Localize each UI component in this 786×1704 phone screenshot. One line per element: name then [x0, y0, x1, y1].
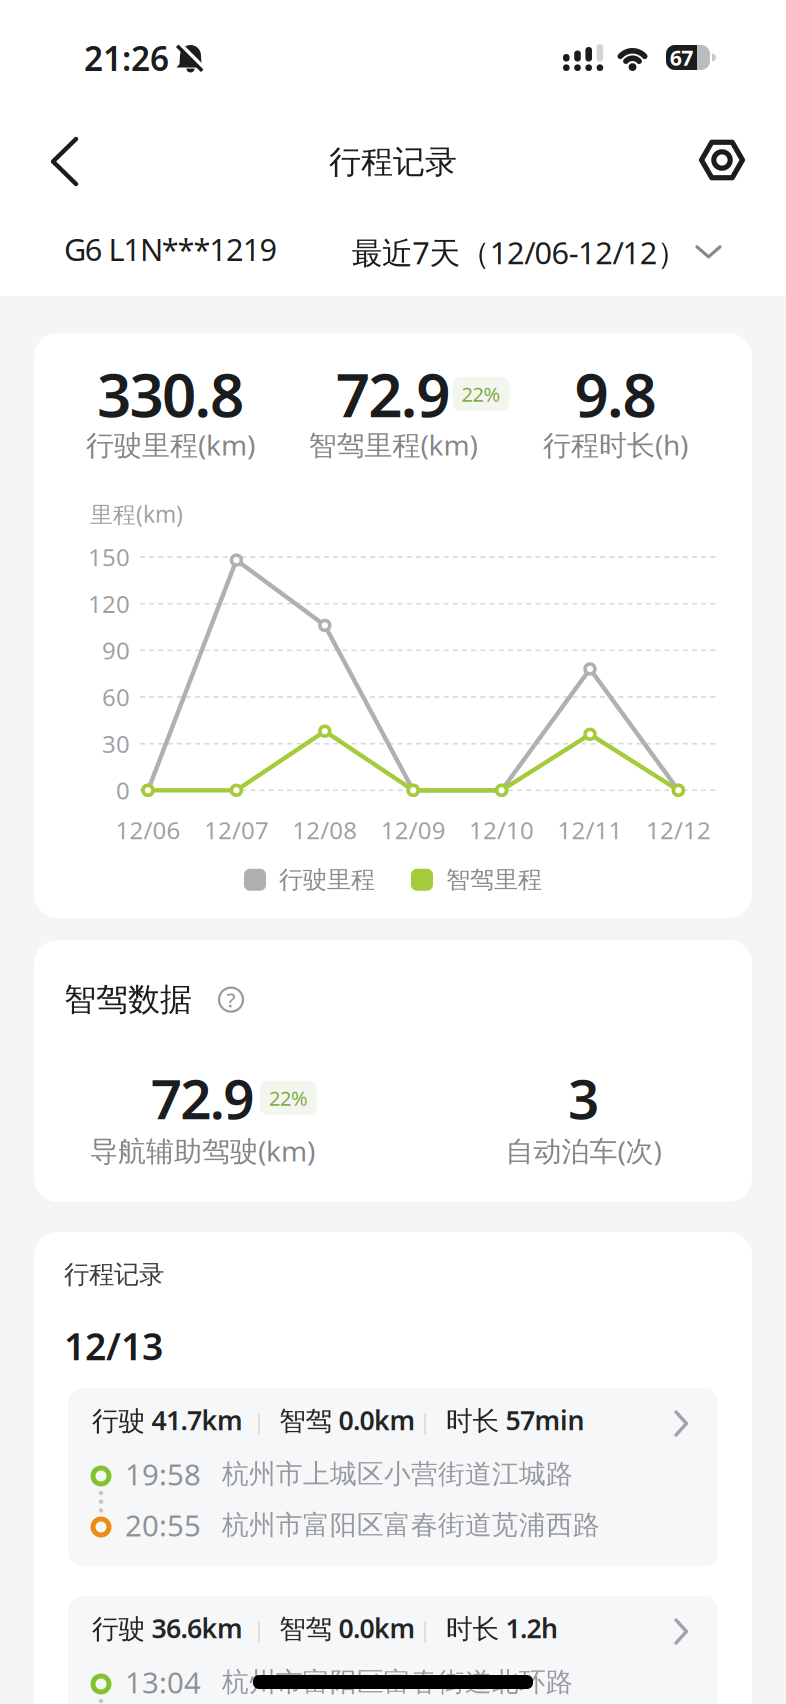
- staticText: 行驶里程: [279, 865, 375, 894]
- staticText: 12/07: [204, 814, 269, 846]
- staticText: 22%: [461, 381, 500, 407]
- staticText: 12/12: [646, 814, 711, 846]
- staticText: 150: [88, 541, 130, 573]
- button[interactable]: 行驶 41.7km: [68, 1388, 718, 1566]
- staticText: 72.9: [151, 1062, 254, 1134]
- staticText: 60: [102, 681, 130, 713]
- staticText: ?: [226, 986, 235, 1013]
- staticText: 里程(km): [90, 499, 183, 529]
- staticText: 12/08: [292, 814, 357, 846]
- staticText: 行程记录: [329, 142, 457, 182]
- staticText: 9.8: [575, 354, 657, 434]
- staticText: 30: [102, 728, 130, 760]
- staticText: 智驾里程: [446, 865, 542, 894]
- staticText: 智驾数据: [64, 980, 192, 1019]
- staticText: 最近7天（12/06-12/12）: [352, 232, 688, 273]
- staticText: 行驶里程(km): [86, 426, 255, 463]
- staticText: 19:58: [125, 1454, 201, 1493]
- staticText: G6 L1N***1219: [64, 229, 278, 269]
- staticText: 12/10: [469, 814, 534, 846]
- staticText: 智驾 0.0km: [279, 1610, 415, 1646]
- staticText: 行程时长(h): [543, 426, 688, 463]
- staticText: 0: [116, 774, 130, 806]
- staticText: 杭州市上城区小营街道江城路: [222, 1458, 573, 1490]
- staticText: 时长 57min: [446, 1402, 584, 1438]
- staticText: 时长 1.2h: [446, 1610, 558, 1646]
- button[interactable]: Back: [0, 126, 100, 197]
- staticText: 杭州市富阳区富春街道北环路: [222, 1666, 573, 1698]
- button[interactable]: About smart drive data: [218, 987, 244, 1013]
- staticText: 20:55: [125, 1505, 201, 1544]
- staticText: 行程记录: [64, 1259, 164, 1290]
- staticText: 智驾里程(km): [308, 426, 477, 463]
- staticText: 330.8: [97, 354, 244, 434]
- staticText: 67: [670, 43, 693, 72]
- staticText: 90: [102, 634, 130, 666]
- staticText: 3: [568, 1062, 599, 1134]
- staticText: 72.9: [336, 354, 450, 434]
- staticText: 21:26: [84, 36, 169, 80]
- staticText: 杭州市富阳区富春街道苋浦西路: [222, 1509, 600, 1541]
- staticText: 12/06: [115, 814, 180, 846]
- staticText: 智驾 0.0km: [279, 1402, 415, 1438]
- staticText: 12/09: [381, 814, 446, 846]
- button[interactable]: 最近7天（12/06-12/12）: [352, 224, 720, 281]
- staticText: 120: [88, 588, 130, 620]
- staticText: 12/11: [557, 814, 622, 846]
- button[interactable]: 行驶 36.6km: [68, 1596, 718, 1704]
- button[interactable]: Settings: [688, 126, 756, 194]
- staticText: 13:04: [125, 1662, 201, 1701]
- staticText: 12/13: [64, 1321, 163, 1371]
- staticText: 行驶 36.6km: [92, 1610, 243, 1646]
- staticText: 导航辅助驾驶(km): [90, 1132, 315, 1169]
- staticText: 行驶 41.7km: [92, 1402, 243, 1438]
- staticText: 自动泊车(次): [505, 1132, 661, 1169]
- staticText: 22%: [269, 1085, 308, 1111]
